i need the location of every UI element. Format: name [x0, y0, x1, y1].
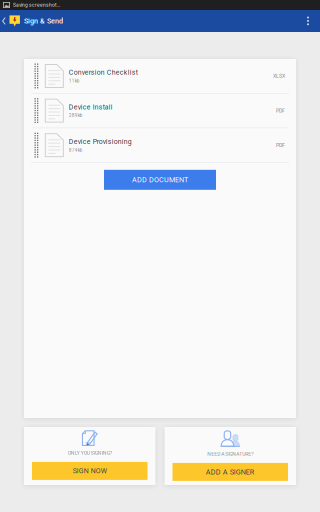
- button[interactable]: Conversion Checklist: [24, 59, 296, 93]
- button[interactable]: More options: [300, 10, 316, 32]
- staticText: XLSX: [273, 73, 285, 79]
- staticText: Device Provisioning: [69, 138, 132, 146]
- staticText: 11kb: [69, 78, 80, 84]
- button[interactable]: ADD DOCUMENT: [104, 170, 216, 190]
- button[interactable]: ADD A SIGNER: [172, 463, 288, 481]
- staticText: Device Install: [69, 103, 113, 111]
- staticText: Conversion Checklist: [69, 68, 138, 76]
- staticText: PDF: [276, 142, 285, 148]
- button[interactable]: Back: [0, 10, 9, 32]
- button[interactable]: SIGN NOW: [32, 462, 147, 480]
- staticText: SIGN NOW: [73, 467, 107, 475]
- staticText: PDF: [276, 108, 285, 114]
- staticText: ADD A SIGNER: [206, 468, 255, 476]
- staticText: NEED A SIGNATURE?: [207, 451, 253, 457]
- button[interactable]: Device Provisioning: [24, 128, 296, 162]
- staticText: Sign & Send: [24, 17, 63, 25]
- staticText: 874kb: [69, 147, 83, 153]
- staticText: ONLY YOU SIGNING?: [68, 450, 112, 456]
- staticText: Saving screenshot…: [13, 2, 60, 8]
- button[interactable]: Device Install: [24, 94, 296, 128]
- staticText: ADD DOCUMENT: [132, 176, 188, 184]
- staticText: 289kb: [69, 113, 83, 118]
